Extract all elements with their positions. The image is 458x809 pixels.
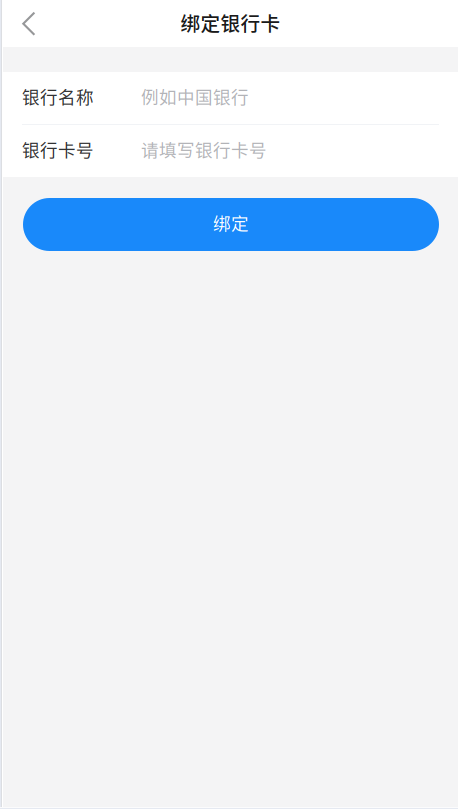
staticText: 银行卡号 — [22, 136, 94, 162]
staticText: 例如中国银行 — [141, 83, 249, 109]
staticText: 绑定银行卡 — [180, 8, 280, 37]
staticText: 绑定 — [213, 210, 249, 235]
staticText: 请填写银行卡号 — [141, 136, 267, 162]
staticText: 银行名称 — [22, 83, 94, 109]
button[interactable]: 银行卡号 — [3, 125, 458, 177]
button[interactable]: 返回 — [3, 0, 57, 47]
button[interactable]: 绑定 — [23, 198, 439, 251]
button[interactable]: 银行名称 — [3, 72, 458, 124]
